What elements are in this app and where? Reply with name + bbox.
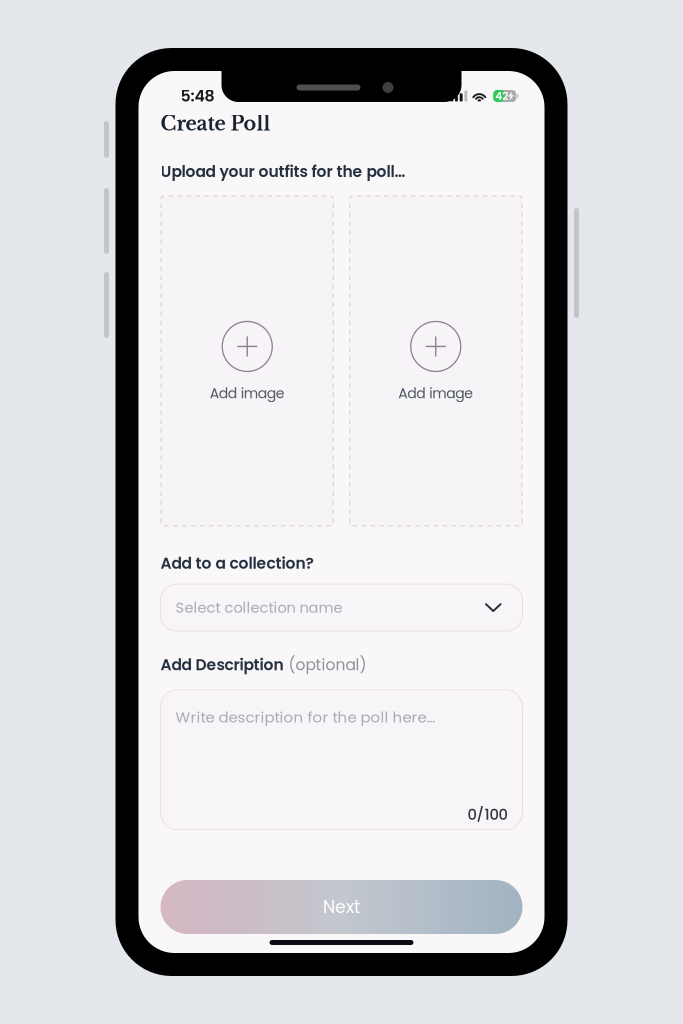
staticText: Upload your outfits for the poll…	[160, 161, 405, 182]
staticText: (optional)	[288, 654, 366, 676]
button[interactable]: Add image	[160, 195, 334, 526]
staticText: Create Poll	[160, 112, 270, 136]
staticText: Write description for the poll here…	[175, 707, 435, 728]
button[interactable]: Next	[160, 880, 522, 934]
staticText: 42	[495, 88, 508, 103]
button[interactable]: Select collection name	[160, 584, 522, 631]
staticText: Select collection name	[175, 597, 342, 618]
staticText: Add image	[210, 383, 285, 403]
staticText: Add to a collection?	[160, 552, 313, 574]
staticText: 5:48	[180, 85, 214, 107]
staticText: Add image	[398, 383, 473, 403]
staticText: Next	[323, 895, 360, 919]
staticText: Add Description	[160, 654, 283, 676]
staticText: 0/100	[467, 804, 507, 825]
button[interactable]: Add image	[349, 195, 522, 526]
